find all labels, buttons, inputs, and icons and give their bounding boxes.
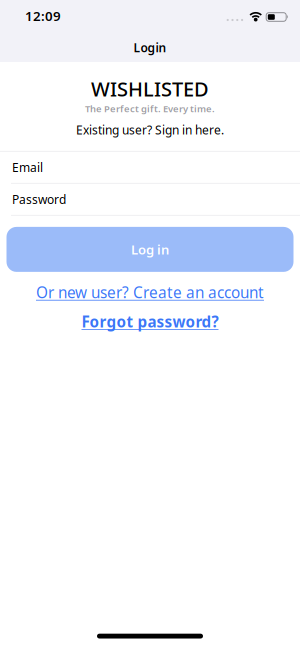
staticText: Forgot password? — [81, 311, 218, 332]
button[interactable]: Password — [0, 184, 300, 215]
staticText: Log in — [131, 240, 169, 258]
staticText: Login — [133, 39, 166, 55]
button[interactable]: Or new user? Create an account — [36, 282, 264, 303]
staticText: WISHLISTED — [91, 75, 209, 102]
button[interactable]: Email — [0, 152, 300, 183]
button[interactable]: Log in — [6, 227, 293, 272]
staticText: Email — [12, 159, 43, 175]
staticText: Existing user? Sign in here. — [76, 122, 224, 138]
staticText: Or new user? Create an account — [36, 282, 264, 303]
staticText: 12:09 — [25, 7, 61, 25]
button[interactable]: Forgot password? — [81, 311, 218, 332]
staticText: Password — [12, 191, 66, 207]
staticText: The Perfect gift. Every time. — [85, 102, 215, 115]
